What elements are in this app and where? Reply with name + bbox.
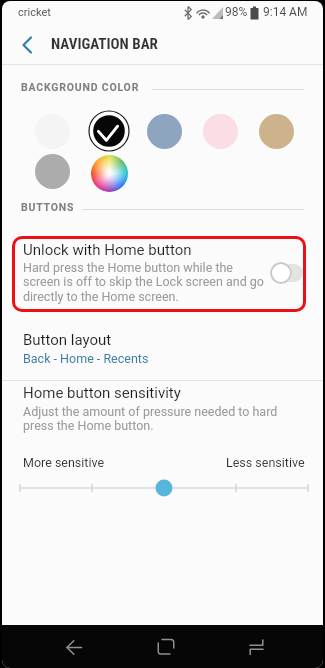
staticText: 9:14 AM [263,5,308,19]
button[interactable] [59,630,89,660]
button[interactable] [35,154,70,189]
button[interactable] [259,114,294,149]
staticText: BUTTONS [21,201,75,213]
staticText: Home button sensitivity [23,384,181,402]
staticText: BACKGROUND COLOR [21,81,140,93]
staticText: Button layout [23,331,112,349]
staticText: Back - Home - Recents [23,351,149,366]
staticText: cricket [18,6,51,19]
button[interactable] [203,114,238,149]
button[interactable]: Button layout [2,323,323,379]
staticText: Adjust the amount of pressure needed to … [23,404,278,434]
staticText: More sensitive [23,455,105,470]
staticText: NAVIGATION BAR [51,35,158,53]
staticText: 98% [225,5,248,19]
button[interactable] [242,630,272,660]
button[interactable]: Home button sensitivity [2,381,323,436]
button[interactable] [12,236,306,312]
button[interactable] [270,264,303,282]
button[interactable] [14,31,42,59]
staticText: Less sensitive [226,455,305,470]
button[interactable] [150,630,180,660]
button[interactable] [88,110,130,152]
staticText: Hard press the Home button while the scr… [23,260,264,305]
button[interactable] [147,114,182,149]
staticText: Unlock with Home button [23,241,192,259]
button[interactable] [2,477,323,501]
button[interactable] [91,155,128,192]
